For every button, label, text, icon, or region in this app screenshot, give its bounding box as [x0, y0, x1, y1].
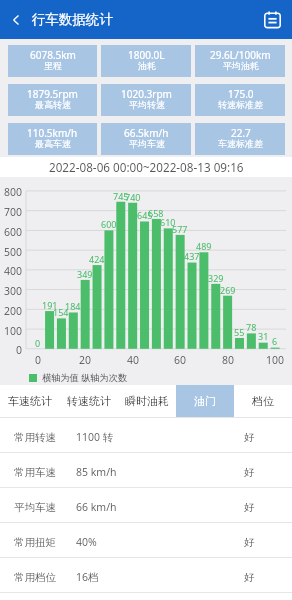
button[interactable]: 1020.3rpm: [101, 84, 191, 116]
staticText: 最高转速: [35, 99, 71, 110]
staticText: 1100 转: [76, 430, 114, 444]
staticText: 档位: [252, 394, 274, 408]
staticText: 转速标准差: [218, 99, 263, 110]
button[interactable]: 常用车速: [0, 453, 292, 487]
staticText: 60: [174, 353, 187, 367]
staticText: 175.0: [228, 87, 254, 101]
staticText: 0: [16, 343, 23, 357]
staticText: 横轴为值 纵轴为次数: [42, 371, 128, 384]
staticText: 6: [272, 335, 278, 347]
button[interactable]: Records: [252, 0, 292, 39]
staticText: 16档: [76, 570, 99, 584]
staticText: 600: [4, 225, 23, 239]
button[interactable]: 常用转速: [0, 418, 292, 452]
button[interactable]: 6078.5km: [8, 45, 97, 77]
staticText: 常用扭矩: [14, 536, 56, 549]
staticText: 好: [244, 536, 255, 549]
button[interactable]: 常用档位: [0, 558, 292, 592]
button[interactable]: 1800.0L: [101, 45, 191, 77]
staticText: 0: [35, 353, 42, 367]
staticText: 好: [244, 571, 255, 584]
staticText: 行车数据统计: [32, 11, 113, 28]
staticText: 66.5km/h: [124, 126, 169, 140]
staticText: 常用车速: [14, 466, 56, 479]
staticText: 2022-08-06 00:00~2022-08-13 09:16: [49, 159, 244, 175]
staticText: 85 km/h: [76, 465, 117, 479]
staticText: 里程: [44, 60, 62, 71]
staticText: 577: [172, 223, 188, 235]
staticText: 658: [148, 207, 164, 219]
staticText: 常用档位: [14, 571, 56, 584]
staticText: 645: [137, 209, 153, 221]
staticText: 55: [234, 326, 245, 338]
staticText: 40%: [76, 535, 97, 549]
button[interactable]: 常用扭矩: [0, 523, 292, 557]
staticText: 110.5km/h: [27, 126, 78, 140]
staticText: 100: [4, 324, 23, 338]
staticText: 油门: [194, 394, 216, 408]
button[interactable]: Back: [0, 0, 32, 39]
button[interactable]: 平均车速: [0, 488, 292, 522]
staticText: 29.6L/100km: [210, 48, 271, 62]
staticText: 489: [196, 240, 212, 252]
staticText: 1800.0L: [128, 48, 165, 62]
button[interactable]: 29.6L/100km: [195, 45, 285, 77]
staticText: 40: [127, 353, 140, 367]
staticText: 瞬时油耗: [125, 394, 169, 408]
staticText: 200: [4, 304, 23, 318]
staticText: 349: [77, 268, 93, 280]
button[interactable]: 瞬时油耗: [118, 385, 176, 417]
staticText: 最高车速: [35, 138, 71, 149]
staticText: 400: [4, 264, 23, 278]
staticText: 437: [184, 250, 200, 262]
staticText: 66 km/h: [76, 500, 117, 514]
staticText: 745: [113, 190, 129, 202]
staticText: 好: [244, 431, 255, 444]
staticText: 22.7: [231, 126, 251, 140]
staticText: 平均转速: [129, 99, 165, 110]
staticText: 740: [125, 191, 141, 203]
staticText: 平均车速: [14, 501, 56, 514]
staticText: 平均车速: [129, 138, 165, 149]
staticText: 好: [244, 466, 255, 479]
button[interactable]: 22.7: [195, 123, 285, 155]
staticText: 31: [258, 330, 269, 342]
button[interactable]: 110.5km/h: [8, 123, 97, 155]
staticText: 平均油耗: [223, 60, 259, 71]
staticText: 1020.3rpm: [121, 87, 172, 101]
staticText: 154: [53, 306, 69, 318]
staticText: 转速统计: [67, 394, 111, 408]
staticText: 329: [208, 272, 224, 284]
staticText: 600: [101, 218, 117, 230]
staticText: 700: [4, 205, 23, 219]
staticText: 300: [4, 284, 23, 298]
staticText: 424: [89, 253, 105, 265]
staticText: 20: [79, 353, 92, 367]
staticText: 车速标准差: [218, 138, 263, 149]
staticText: 184: [65, 300, 81, 312]
button[interactable]: 66.5km/h: [101, 123, 191, 155]
staticText: 800: [4, 185, 23, 199]
staticText: 0: [35, 337, 41, 349]
staticText: 好: [244, 501, 255, 514]
staticText: 100: [266, 353, 285, 367]
staticText: 500: [4, 245, 23, 259]
staticText: 6078.5km: [30, 48, 76, 62]
staticText: 191: [42, 299, 58, 311]
button[interactable]: 转速统计: [59, 385, 118, 417]
staticText: 车速统计: [8, 394, 52, 408]
button[interactable]: 油门: [176, 385, 234, 417]
button[interactable]: 175.0: [195, 84, 285, 116]
button[interactable]: 档位: [234, 385, 292, 417]
staticText: 常用转速: [14, 431, 56, 444]
button[interactable]: 1879.5rpm: [8, 84, 97, 116]
staticText: 油耗: [138, 60, 156, 71]
staticText: 610: [160, 216, 176, 228]
staticText: 269: [220, 284, 236, 296]
staticText: 80: [222, 353, 235, 367]
staticText: 1879.5rpm: [27, 87, 78, 101]
staticText: 78: [246, 321, 257, 333]
button[interactable]: 车速统计: [0, 385, 59, 417]
